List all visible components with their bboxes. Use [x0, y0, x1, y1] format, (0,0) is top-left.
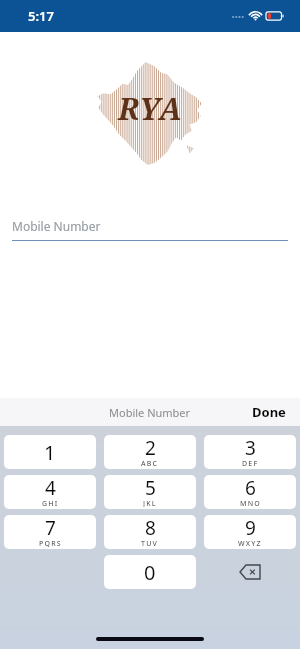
button[interactable]: 3 — [204, 435, 296, 469]
staticText: Done — [252, 403, 286, 421]
staticText: Mobile Number — [109, 405, 191, 420]
staticText: Mobile Number — [12, 218, 101, 234]
button[interactable]: 4 — [4, 475, 96, 509]
staticText: RYA — [118, 88, 183, 129]
staticText: DEF — [242, 459, 259, 467]
staticText: WXYZ — [238, 539, 262, 547]
staticText: 1 — [44, 439, 56, 466]
button[interactable]: Backspace — [200, 552, 300, 592]
staticText: JKL — [143, 499, 157, 507]
button[interactable]: 8 — [104, 515, 196, 549]
staticText: 2 — [145, 435, 156, 461]
staticText: 7 — [45, 515, 56, 541]
staticText: 5 — [145, 475, 156, 501]
staticText: 8 — [145, 515, 156, 541]
staticText: GHI — [42, 499, 59, 507]
button[interactable]: 2 — [104, 435, 196, 469]
staticText: MNO — [240, 499, 261, 507]
staticText: 6 — [245, 475, 256, 501]
staticText: PQRS — [39, 539, 62, 547]
button[interactable]: 6 — [204, 475, 296, 509]
staticText: ABC — [141, 459, 159, 467]
button[interactable]: 9 — [204, 515, 296, 549]
button[interactable]: 7 — [4, 515, 96, 549]
staticText: 0 — [144, 559, 156, 586]
staticText: 4 — [45, 475, 56, 501]
button[interactable]: Done — [238, 399, 300, 425]
staticText: 3 — [245, 435, 256, 461]
button[interactable]: 0 — [104, 555, 196, 589]
button[interactable]: 5 — [104, 475, 196, 509]
button[interactable]: 1 — [4, 435, 96, 469]
staticText: 5:17 — [28, 7, 54, 25]
staticText: TUV — [141, 539, 159, 547]
staticText: 9 — [245, 515, 256, 541]
